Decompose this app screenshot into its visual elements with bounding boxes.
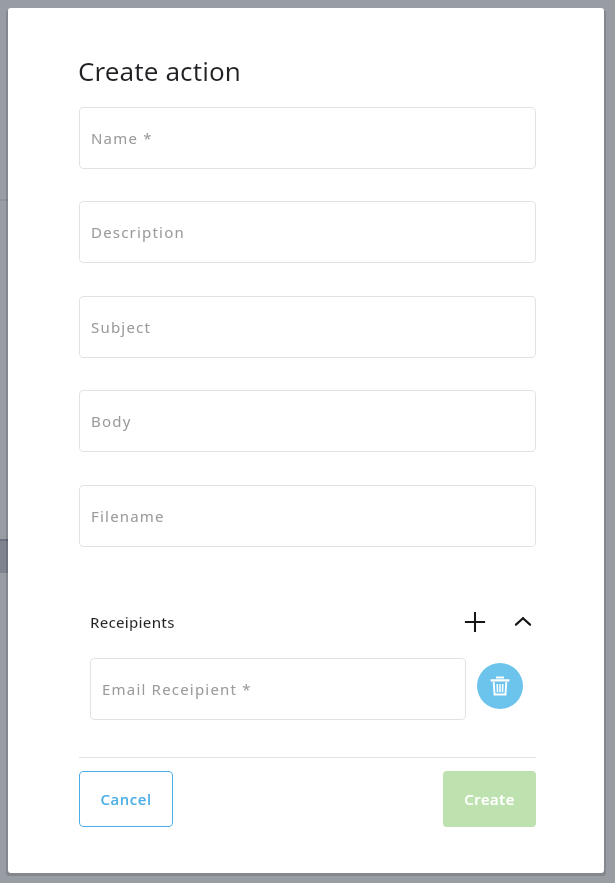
button[interactable]: Add recipient [455,602,495,642]
staticText: Subject [91,317,152,337]
button[interactable]: Description [79,201,536,263]
button[interactable]: Email Receipient * [90,658,466,720]
button[interactable]: Cancel [79,771,173,827]
staticText: Email Receipient * [102,679,252,699]
button[interactable]: Delete recipient [477,663,523,709]
staticText: Body [91,411,132,431]
staticText: Receipients [90,612,175,632]
staticText: Create [464,789,515,809]
button[interactable]: Subject [79,296,536,358]
button[interactable]: Body [79,390,536,452]
staticText: Name * [91,128,153,148]
button[interactable]: Filename [79,485,536,547]
button[interactable]: Collapse recipients [503,602,543,642]
button[interactable]: Name * [79,107,536,169]
staticText: Create action [78,53,241,88]
staticText: Filename [91,506,165,526]
staticText: Cancel [100,789,152,809]
staticText: Description [91,222,185,242]
button[interactable]: Create [443,771,536,827]
